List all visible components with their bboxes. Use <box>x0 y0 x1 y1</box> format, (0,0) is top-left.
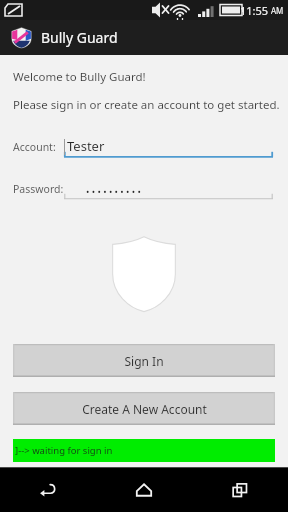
button[interactable]: Back <box>0 467 96 512</box>
staticText: Sign In <box>124 353 164 369</box>
button[interactable]: • • • • • • • • • • <box>64 174 273 200</box>
staticText: Welcome to Bully Guard! <box>13 69 146 85</box>
button[interactable]: Tester <box>64 132 273 158</box>
staticText: • • • • • • • • • • <box>86 185 141 197</box>
staticText: Account: <box>13 140 56 154</box>
staticText: ]--> waiting for sign in <box>15 444 113 457</box>
staticText: 11:55 <box>240 3 269 18</box>
staticText: Create A New Account <box>82 401 207 417</box>
button[interactable]: Recent apps <box>192 467 288 512</box>
staticText: AM <box>271 5 284 16</box>
button[interactable]: ]--> waiting for sign in <box>13 439 275 462</box>
button[interactable]: Create A New Account <box>13 392 275 425</box>
staticText: Password: <box>13 182 64 196</box>
staticText: Tester <box>67 137 105 155</box>
button[interactable]: Sign In <box>13 344 275 377</box>
button[interactable]: Home <box>96 467 192 512</box>
staticText: Please sign in or create an account to g… <box>13 97 280 113</box>
staticText: Bully Guard <box>41 28 118 47</box>
